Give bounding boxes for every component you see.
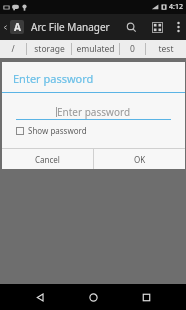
staticText: corrupted.rar [2, 78, 44, 87]
button[interactable]: fruit.part1.rar [92, 61, 139, 95]
staticText: / [11, 43, 15, 55]
staticText: A [14, 20, 21, 34]
button[interactable]: TestData.rar [46, 99, 92, 133]
button[interactable]: Search [118, 14, 144, 40]
button[interactable]: emulated [72, 40, 119, 58]
staticText: unrar.rar [149, 116, 176, 125]
button[interactable]: Show password [16, 125, 87, 136]
staticText: Cancel [35, 154, 60, 165]
staticText: 0 [130, 43, 135, 55]
button[interactable]: corrupted.rar [0, 61, 46, 95]
staticText: Arc File Manager [31, 20, 118, 34]
staticText: storage [34, 43, 65, 55]
staticText: test [158, 43, 174, 55]
staticText: unrar.rar [10, 154, 37, 163]
button[interactable]: unrar.7z [92, 99, 139, 133]
button[interactable]: More options [170, 14, 186, 40]
staticText: emulated [76, 43, 115, 55]
button[interactable]: fruit.part2.rar [139, 61, 186, 95]
button[interactable]: Home [80, 284, 106, 310]
staticText: Enter password [13, 71, 94, 86]
staticText: TestData.rar [50, 116, 88, 125]
button[interactable]: test_rar.rar [0, 99, 46, 133]
button[interactable]: OK [94, 149, 185, 169]
button[interactable]: unrar.rar [139, 99, 186, 133]
button[interactable]: Up [0, 14, 27, 40]
staticText: test_rar.rar [7, 116, 40, 125]
staticText: Dialer.rar [55, 78, 83, 87]
staticText: unrar.7z [103, 116, 128, 125]
button[interactable]: / [0, 40, 26, 58]
button[interactable]: 0 [120, 40, 145, 58]
button[interactable]: Dialer.rar [46, 61, 92, 95]
button[interactable]: Enter password [16, 105, 171, 119]
staticText: Enter password [57, 105, 131, 119]
button[interactable]: storage [27, 40, 71, 58]
button[interactable]: View mode [144, 14, 170, 40]
button[interactable]: test [146, 40, 186, 58]
staticText: OK [134, 154, 146, 165]
staticText: 4:12 [169, 2, 183, 12]
button[interactable]: Recents [133, 284, 159, 310]
button[interactable]: unrar.rar [0, 137, 46, 171]
button[interactable]: Cancel [2, 149, 93, 169]
button[interactable]: Back [27, 284, 53, 310]
staticText: Show password [28, 125, 87, 136]
